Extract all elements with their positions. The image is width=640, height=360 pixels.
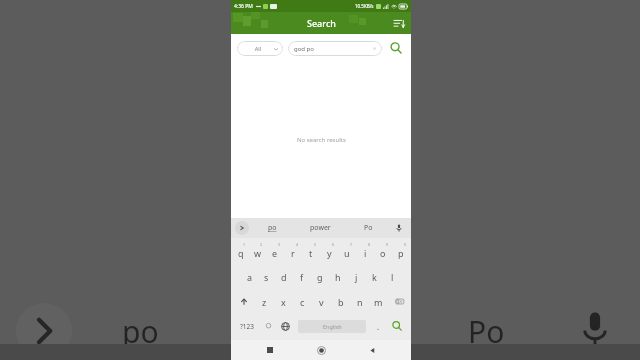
button[interactable]: k [365,264,383,289]
button[interactable]: All [237,41,283,56]
staticText: po [122,311,159,352]
staticText: r [291,247,295,259]
button[interactable]: Backspace [388,289,409,314]
button[interactable]: g [311,264,329,289]
staticText: u [344,247,350,259]
staticText: 4:36 PM [234,3,253,10]
staticText: 3 [278,242,281,247]
button[interactable]: l [383,264,401,289]
button[interactable]: 9 [374,239,392,264]
staticText: All [242,45,274,52]
staticText: . [377,321,380,332]
staticText: 9 [386,242,389,247]
staticText: 7 [350,242,353,247]
button[interactable]: x [274,289,293,314]
staticText: Search [307,17,336,29]
staticText: z [262,296,267,308]
button[interactable]: po [249,218,296,238]
button[interactable]: 5 [302,239,320,264]
button[interactable]: Home [309,340,333,360]
button[interactable]: Sort [391,15,407,31]
staticText: k [372,271,377,283]
staticText: 5 [314,242,317,247]
staticText: 4 [296,242,299,247]
staticText: m [374,296,383,308]
staticText: po [268,223,277,233]
button[interactable]: 4 [284,239,302,264]
button[interactable]: 7 [338,239,356,264]
staticText: d [281,271,287,283]
button[interactable]: Voice input [392,221,406,235]
button[interactable]: 3 [266,239,284,264]
staticText: s [264,271,269,283]
button[interactable]: English [298,320,366,333]
button[interactable]: s [258,264,275,289]
staticText: v [319,296,324,308]
staticText: Po [364,223,373,233]
staticText: ?123 [240,322,254,331]
button[interactable]: Emoji [260,314,276,338]
staticText: y [327,247,332,259]
staticText: a [247,271,253,283]
button[interactable]: power [296,218,344,238]
staticText: 8 [368,242,371,247]
button[interactable]: 8 [356,239,374,264]
button[interactable]: b [331,289,350,314]
staticText: p [398,247,404,259]
staticText: w [254,247,262,259]
button[interactable]: z [255,289,274,314]
button[interactable]: 6 [320,239,338,264]
staticText: t [309,247,313,259]
staticText: 10.5KB/s [355,3,374,9]
staticText: 0 [404,242,407,247]
button[interactable]: Search [387,39,405,57]
button[interactable]: n [350,289,369,314]
button[interactable]: v [312,289,331,314]
button[interactable]: a [241,264,258,289]
staticText: 2 [260,242,263,247]
staticText: god po [294,45,314,53]
button[interactable]: c [293,289,312,314]
button[interactable]: f [293,264,311,289]
button[interactable]: Back [360,340,384,360]
staticText: i [364,247,367,259]
button[interactable]: h [329,264,347,289]
button[interactable]: ?123 [234,314,260,338]
staticText: Po [468,311,505,352]
staticText: English [323,323,342,330]
staticText: o [380,247,386,259]
button[interactable]: Recent apps [258,340,282,360]
button[interactable]: god po [288,41,382,56]
staticText: q [238,247,244,259]
staticText: j [355,271,358,283]
button[interactable]: 1 [232,239,249,264]
button[interactable]: Change language [276,314,294,338]
staticText: No search results [297,136,346,144]
staticText: x [281,296,286,308]
staticText: power [310,223,331,233]
staticText: l [391,271,394,283]
button[interactable]: 2 [249,239,266,264]
button[interactable]: d [275,264,293,289]
button[interactable]: Shift [233,289,255,314]
button[interactable]: 0 [392,239,410,264]
button[interactable]: . [370,314,386,338]
staticText: e [272,247,278,259]
staticText: n [357,296,363,308]
staticText: h [335,271,341,283]
button[interactable]: Expand suggestions [235,221,249,235]
staticText: c [300,296,305,308]
button[interactable]: Po [344,218,392,238]
staticText: b [338,296,344,308]
staticText: f [300,271,304,283]
staticText: 6 [332,242,335,247]
staticText: g [317,271,323,283]
button[interactable]: m [369,289,388,314]
staticText: 1 [243,242,246,247]
button[interactable]: Search [386,314,408,338]
button[interactable]: j [347,264,365,289]
